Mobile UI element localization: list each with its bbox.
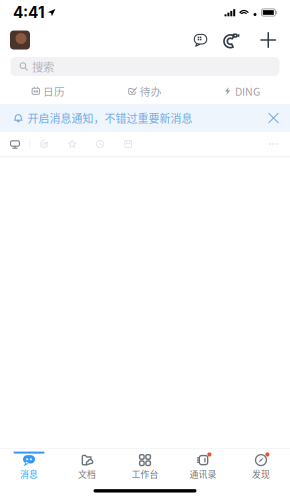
staticText: DING	[235, 83, 260, 99]
staticText: 消息	[20, 468, 38, 480]
staticText: 发现	[252, 468, 270, 480]
staticText: 工作台	[131, 468, 158, 480]
staticText: 文档	[78, 468, 96, 480]
button[interactable]: 工作台	[116, 449, 174, 482]
button[interactable]: Close	[268, 112, 279, 123]
staticText: 通讯录	[189, 468, 216, 480]
button[interactable]: Profile	[10, 30, 30, 49]
button[interactable]: Call	[223, 32, 239, 48]
button[interactable]: 消息	[0, 449, 58, 482]
button[interactable]: More	[268, 142, 279, 146]
button[interactable]: 文档	[58, 449, 116, 482]
button[interactable]: 通讯录	[174, 449, 232, 482]
button[interactable]: DING	[193, 78, 290, 104]
button[interactable]: 发现	[232, 449, 290, 482]
button[interactable]: 搜索	[10, 57, 279, 76]
staticText: 搜索	[32, 58, 54, 75]
staticText: 日历	[43, 83, 65, 99]
button[interactable]: 待办	[97, 78, 193, 104]
button[interactable]: 日历	[0, 78, 97, 104]
staticText: 4:41	[13, 3, 45, 22]
button[interactable]: Starred	[68, 139, 77, 148]
staticText: 待办	[140, 83, 162, 99]
button[interactable]: Recent	[96, 139, 105, 148]
button[interactable]: Archive	[124, 139, 133, 148]
button[interactable]: Device	[10, 139, 20, 149]
staticText: 开启消息通知，不错过重要新消息	[27, 110, 192, 126]
button[interactable]: Scan	[193, 33, 207, 47]
button[interactable]: Mentions	[40, 139, 49, 148]
button[interactable]: Add	[260, 32, 276, 48]
